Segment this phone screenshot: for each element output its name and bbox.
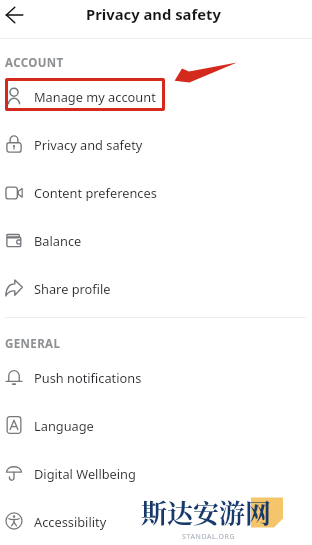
staticText: Manage my account [34, 88, 156, 105]
button[interactable]: Share profile [0, 264, 312, 312]
button[interactable]: Content preferences [0, 168, 312, 216]
staticText: Balance [34, 232, 82, 249]
staticText: Accessibility [34, 513, 107, 530]
staticText: Content preferences [34, 184, 157, 201]
button[interactable]: Push notifications [0, 353, 312, 401]
staticText: 斯达安游网 [141, 493, 272, 530]
staticText: STANDAL.ORG [182, 532, 236, 542]
staticText: Digital Wellbeing [34, 465, 136, 482]
staticText: Share profile [34, 280, 111, 297]
staticText: ACCOUNT [5, 55, 64, 71]
button[interactable]: Back [5, 6, 23, 24]
button[interactable]: Privacy and safety [0, 120, 312, 168]
button[interactable]: Balance [0, 216, 312, 264]
button[interactable]: Digital Wellbeing [0, 449, 312, 497]
staticText: Push notifications [34, 369, 142, 386]
button[interactable]: Manage my account [0, 72, 312, 120]
staticText: Language [34, 417, 94, 434]
staticText: GENERAL [5, 336, 61, 352]
button[interactable]: Language [0, 401, 312, 449]
staticText: Privacy and safety [86, 4, 221, 24]
button[interactable]: Accessibility [0, 497, 312, 545]
staticText: Privacy and safety [34, 136, 143, 153]
